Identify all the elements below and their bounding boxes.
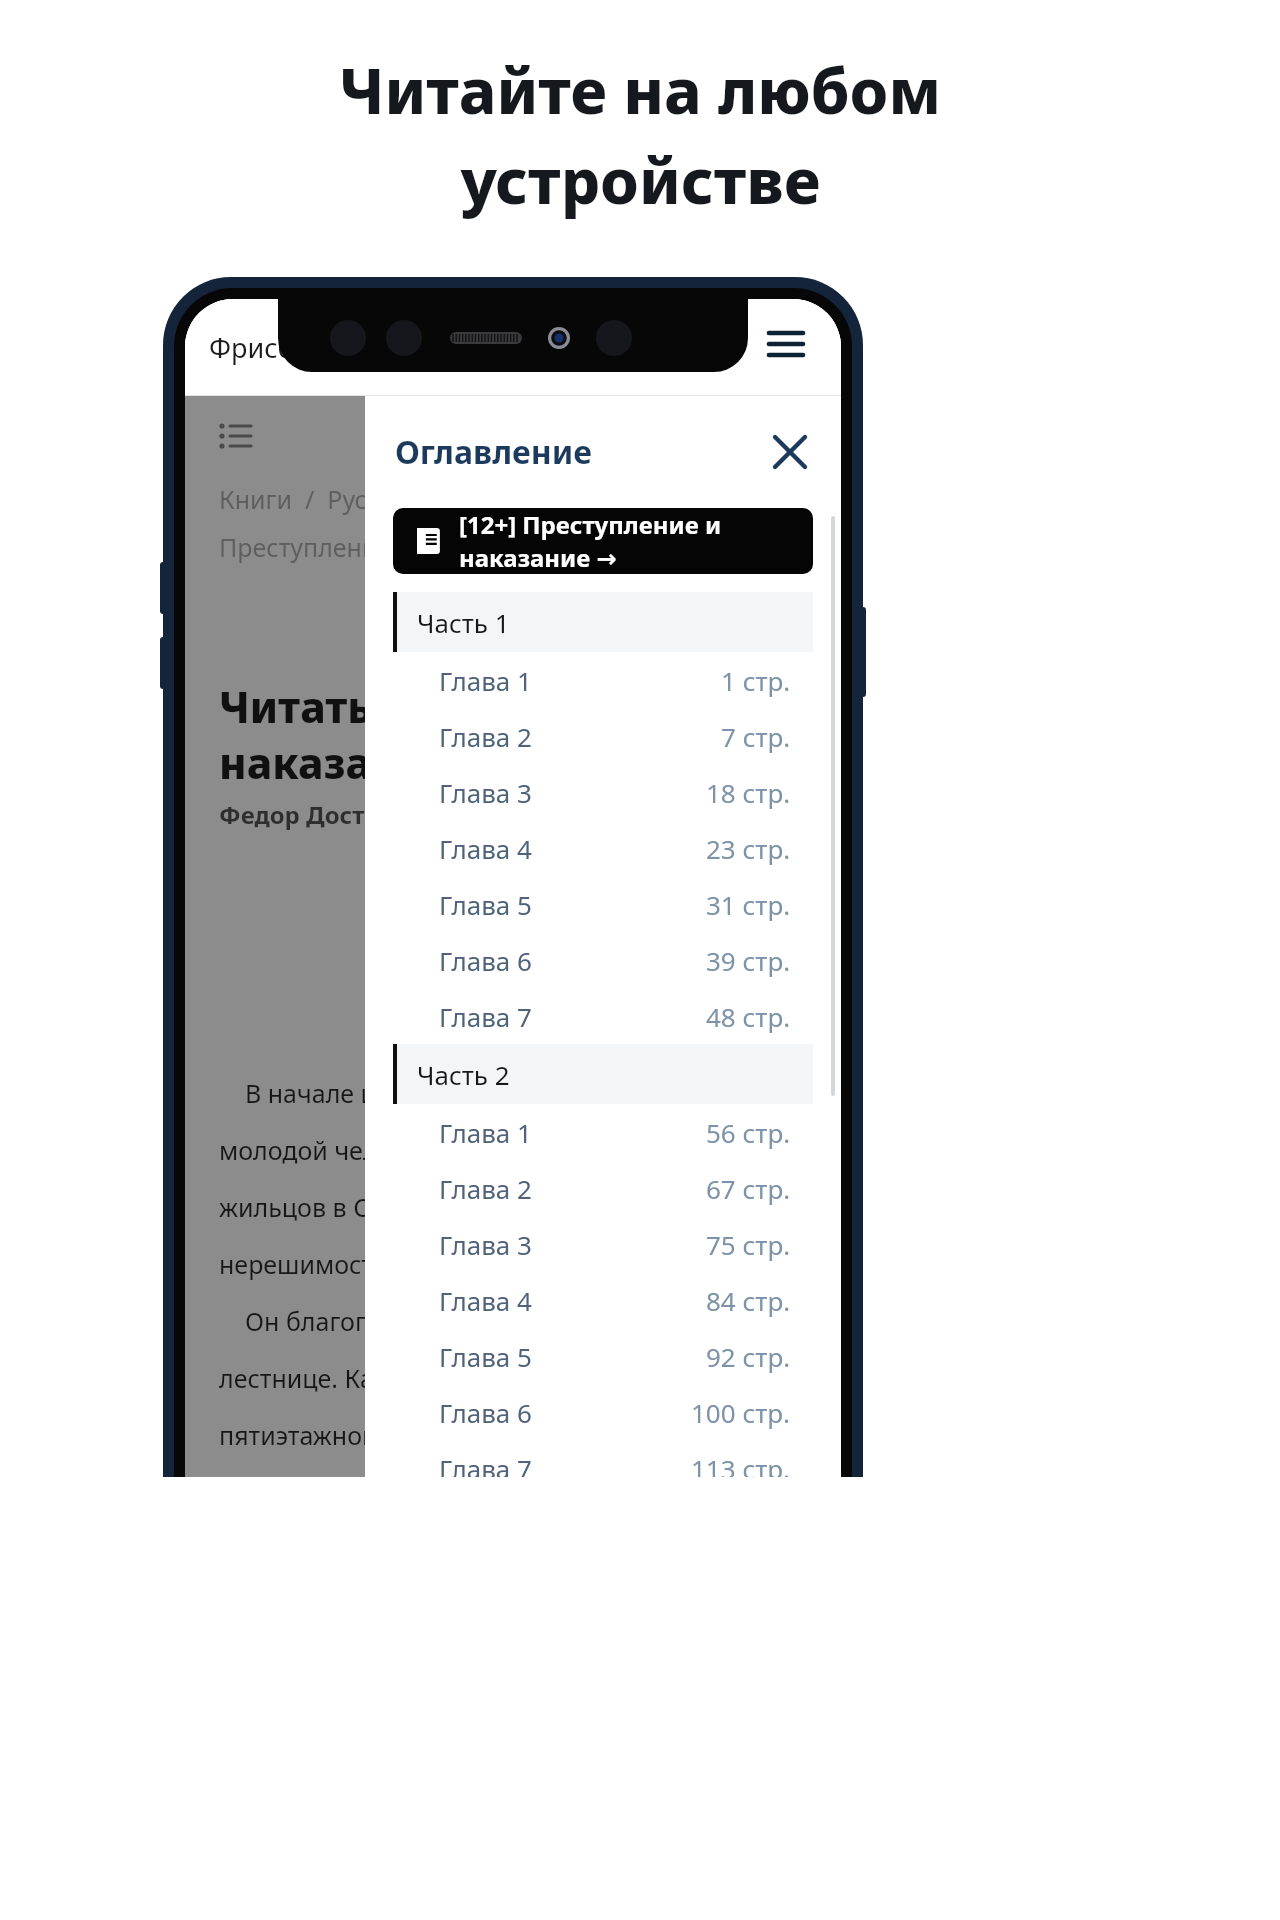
staticText: 1 стр.: [721, 663, 791, 698]
staticText: Оглавление: [395, 430, 593, 474]
staticText: 100 стр.: [691, 1395, 791, 1430]
staticText: наказани: [219, 734, 428, 791]
button[interactable]: Глава 6: [393, 1384, 813, 1440]
staticText: Настройки: [584, 330, 715, 364]
staticText: Часть 2: [417, 1057, 510, 1092]
button[interactable]: Настройки: [528, 320, 737, 374]
button[interactable]: Глава 3: [393, 764, 813, 820]
staticText: Глава 1: [439, 663, 532, 698]
staticText: 67 стр.: [706, 1171, 791, 1206]
staticText: Глава 6: [439, 1395, 532, 1430]
staticText: Глава 2: [439, 719, 532, 754]
staticText: 75 стр.: [706, 1227, 791, 1262]
button[interactable]: Закрыть: [763, 425, 817, 479]
button[interactable]: Глава 4: [393, 1272, 813, 1328]
staticText: Глава 4: [439, 1283, 532, 1318]
staticText: 18 стр.: [706, 775, 791, 810]
staticText: молодой челове: [219, 1133, 421, 1167]
staticText: 7 стр.: [721, 719, 791, 754]
button[interactable]: Глава 7: [393, 1440, 813, 1477]
staticText: Часть 1: [417, 605, 510, 640]
button[interactable]: Глава 2: [393, 708, 813, 764]
staticText: 56 стр.: [706, 1115, 791, 1150]
staticText: Читайте на любом: [339, 48, 941, 132]
staticText: В начале ию: [219, 1076, 397, 1110]
button[interactable]: Глава 5: [393, 1328, 813, 1384]
staticText: Глава 3: [439, 1227, 532, 1262]
staticText: 39 стр.: [706, 943, 791, 978]
staticText: 23 стр.: [706, 831, 791, 866]
staticText: Он благопол: [219, 1304, 400, 1338]
staticText: Глава 5: [439, 1339, 532, 1374]
button[interactable]: Глава 1: [393, 652, 813, 708]
button[interactable]: Часть 1: [393, 592, 813, 652]
staticText: Глава 4: [439, 831, 532, 866]
button[interactable]: Меню: [757, 318, 815, 376]
staticText: устройстве: [460, 138, 821, 222]
staticText: лестнице. Камо: [219, 1361, 408, 1395]
staticText: 92 стр.: [706, 1339, 791, 1374]
staticText: Книги / Русс: [219, 482, 379, 516]
staticText: Глава 1: [439, 1115, 532, 1150]
button[interactable]: Глава 7: [393, 988, 813, 1044]
staticText: Преступление: [219, 530, 392, 564]
staticText: Глава 3: [439, 775, 532, 810]
staticText: Глава 6: [439, 943, 532, 978]
staticText: 31 стр.: [706, 887, 791, 922]
staticText: Глава 2: [439, 1171, 532, 1206]
staticText: Квартирная же: [219, 1475, 403, 1477]
button[interactable]: Глава 5: [393, 876, 813, 932]
staticText: Глава 5: [439, 887, 532, 922]
staticText: Читать к: [219, 678, 410, 735]
button[interactable]: Глава 1: [393, 1104, 813, 1160]
staticText: Глава 7: [439, 999, 532, 1034]
staticText: нерешимости, с: [219, 1247, 415, 1281]
button[interactable]: [12+] Преступление и наказание →: [393, 508, 813, 574]
staticText: жильцов в С-м: [219, 1190, 397, 1224]
button[interactable]: Глава 6: [393, 932, 813, 988]
staticText: Глава 7: [439, 1451, 532, 1477]
staticText: 84 стр.: [706, 1283, 791, 1318]
staticText: Фрисби: [209, 329, 311, 366]
staticText: 48 стр.: [706, 999, 791, 1034]
button[interactable]: Глава 2: [393, 1160, 813, 1216]
staticText: 113 стр.: [691, 1451, 791, 1477]
button[interactable]: Часть 2: [393, 1044, 813, 1104]
button[interactable]: Глава 4: [393, 820, 813, 876]
staticText: Федор Достоев: [219, 798, 408, 831]
staticText: пятиэтажного д: [219, 1418, 410, 1452]
button[interactable]: Глава 3: [393, 1216, 813, 1272]
staticText: [12+] Преступление и наказание →: [459, 508, 789, 574]
